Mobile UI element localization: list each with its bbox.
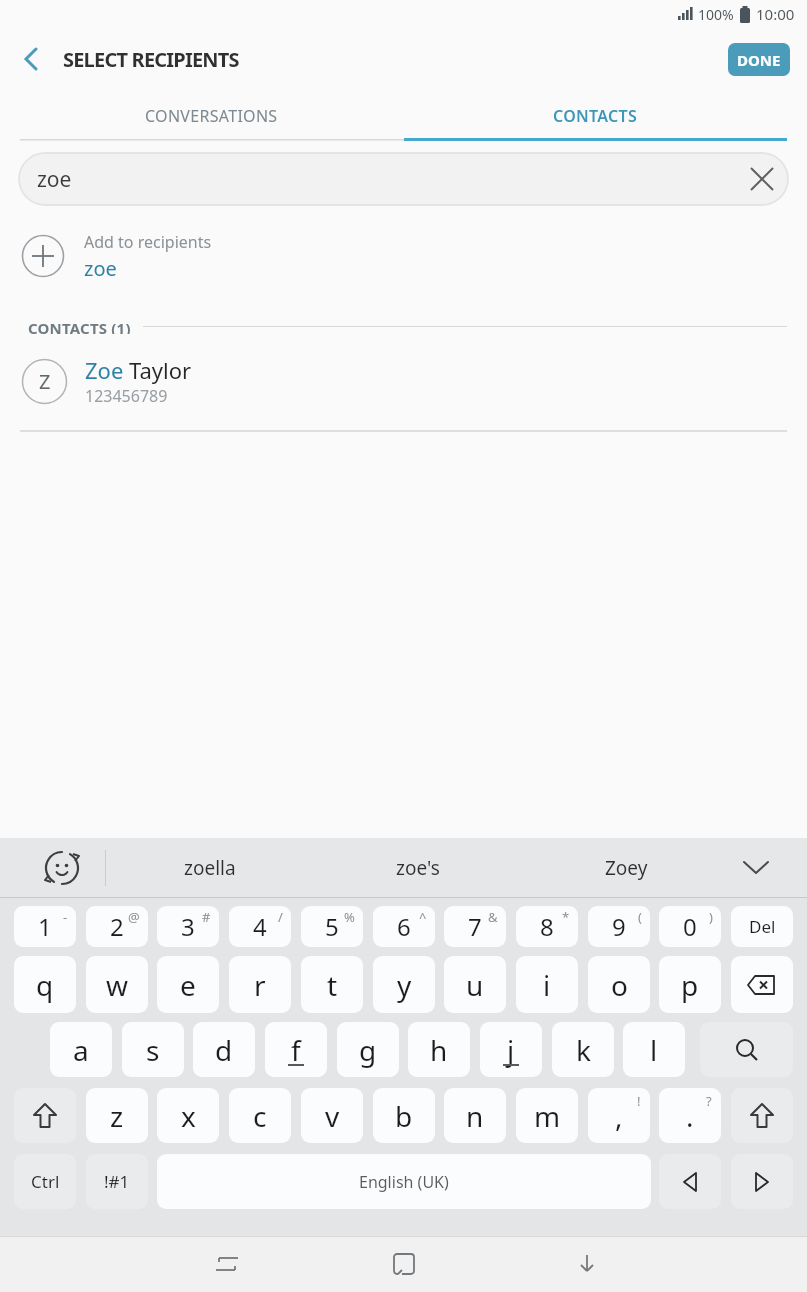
button[interactable]: g [337, 1022, 399, 1077]
button[interactable]: Zoey [522, 838, 730, 898]
staticText: zoe's [396, 855, 440, 881]
button[interactable] [731, 1154, 793, 1209]
button[interactable] [742, 159, 782, 199]
button[interactable]: zoella [106, 838, 314, 898]
staticText: c [253, 1097, 267, 1135]
button[interactable]: 6 [373, 906, 435, 947]
staticText: Z [39, 368, 51, 395]
button[interactable]: v [301, 1088, 363, 1143]
staticText: , [615, 1097, 623, 1135]
button[interactable] [38, 844, 86, 892]
button[interactable]: u [444, 956, 506, 1013]
staticText: CONTACTS (1) [28, 318, 131, 334]
button[interactable]: k [552, 1022, 614, 1077]
button[interactable]: CONVERSATIONS [0, 90, 403, 142]
staticText: ^ [419, 908, 427, 926]
button[interactable]: h [408, 1022, 470, 1077]
button[interactable]: DONE [728, 43, 790, 76]
staticText: 10:00 [756, 4, 795, 24]
staticText: b [395, 1097, 413, 1135]
staticText: . [686, 1097, 694, 1135]
button[interactable]: zoe's [314, 838, 522, 898]
staticText: * [562, 908, 570, 926]
button[interactable]: s [122, 1022, 184, 1077]
staticText: o [611, 966, 628, 1004]
button[interactable] [203, 1240, 251, 1288]
button[interactable]: x [157, 1088, 219, 1143]
button[interactable] [659, 1154, 721, 1209]
staticText: p [681, 966, 699, 1004]
staticText: ? [706, 1092, 712, 1110]
button[interactable]: y [373, 956, 435, 1013]
staticText: 8 [540, 910, 554, 943]
button[interactable]: z [86, 1088, 148, 1143]
button[interactable]: q [14, 956, 76, 1013]
button[interactable]: , [588, 1088, 650, 1143]
button[interactable] [380, 1240, 428, 1288]
staticText: Del [749, 915, 776, 938]
button[interactable]: 2 [86, 906, 148, 947]
staticText: zoe [84, 255, 117, 282]
staticText: # [202, 908, 211, 926]
button[interactable]: 9 [588, 906, 650, 947]
button[interactable] [563, 1240, 611, 1288]
button[interactable] [700, 1022, 793, 1077]
button[interactable] [731, 1088, 793, 1143]
button[interactable]: w [86, 956, 148, 1013]
staticText: 4 [253, 910, 267, 943]
staticText: q [36, 966, 54, 1004]
button[interactable]: 3 [157, 906, 219, 947]
button[interactable]: f [265, 1022, 327, 1077]
button[interactable]: n [444, 1088, 506, 1143]
staticText: 3 [181, 910, 195, 943]
staticText: !#1 [104, 1170, 130, 1193]
button[interactable]: 7 [444, 906, 506, 947]
button[interactable]: 5 [301, 906, 363, 947]
staticText: SELECT RECIPIENTS [63, 46, 239, 73]
button[interactable]: 1 [14, 906, 76, 947]
button[interactable]: CONTACTS [403, 90, 807, 142]
button[interactable]: p [659, 956, 721, 1013]
button[interactable]: r [229, 956, 291, 1013]
button[interactable]: c [229, 1088, 291, 1143]
staticText: j [507, 1031, 515, 1069]
staticText: z [110, 1097, 124, 1135]
button[interactable]: l [623, 1022, 685, 1077]
button[interactable]: t [301, 956, 363, 1013]
button[interactable]: b [373, 1088, 435, 1143]
staticText: ( [638, 908, 642, 926]
staticText: l [650, 1031, 658, 1069]
staticText: s [146, 1031, 160, 1069]
button[interactable] [14, 42, 48, 76]
staticText: 2 [110, 910, 124, 943]
button[interactable]: zoe [18, 152, 789, 206]
staticText: i [543, 966, 551, 1004]
staticText: 123456789 [85, 385, 168, 407]
button[interactable]: !#1 [86, 1154, 148, 1209]
button[interactable]: Add to recipients [22, 228, 807, 284]
button[interactable]: i [516, 956, 578, 1013]
button[interactable]: 8 [516, 906, 578, 947]
button[interactable]: j [480, 1022, 542, 1077]
staticText: @ [128, 908, 140, 926]
button[interactable]: . [659, 1088, 721, 1143]
button[interactable]: m [516, 1088, 578, 1143]
staticText: - [63, 908, 68, 926]
button[interactable]: 0 [659, 906, 721, 947]
button[interactable]: Z [22, 355, 807, 407]
button[interactable]: d [193, 1022, 255, 1077]
button[interactable]: Del [731, 906, 793, 947]
button[interactable]: e [157, 956, 219, 1013]
button[interactable]: o [588, 956, 650, 1013]
button[interactable]: a [50, 1022, 112, 1077]
button[interactable] [733, 845, 779, 891]
staticText: a [73, 1031, 89, 1069]
staticText: 5 [325, 910, 339, 943]
staticText: CONTACTS [553, 105, 638, 127]
button[interactable] [14, 1088, 76, 1143]
button[interactable]: 4 [229, 906, 291, 947]
button[interactable] [731, 956, 793, 1013]
button[interactable]: Ctrl [14, 1154, 76, 1209]
button[interactable]: English (UK) [157, 1154, 651, 1209]
staticText: 0 [683, 910, 697, 943]
